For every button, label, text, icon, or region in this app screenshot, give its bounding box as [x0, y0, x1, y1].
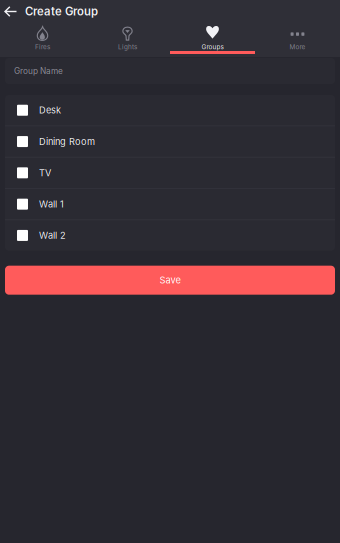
staticText: More	[289, 43, 305, 51]
staticText: Save	[159, 275, 180, 286]
staticText: Lights	[118, 43, 137, 51]
staticText: Groups	[201, 43, 223, 51]
staticText: Group Name	[14, 66, 63, 76]
staticText: Wall 1	[39, 199, 64, 210]
staticText: Create Group	[25, 5, 98, 18]
button[interactable]: More	[255, 23, 340, 57]
button[interactable]: Back	[0, 0, 25, 23]
button[interactable]: Lights	[85, 23, 170, 57]
button[interactable]: Wall 1	[5, 189, 335, 219]
staticText: Desk	[39, 105, 61, 116]
button[interactable]: Fires	[0, 23, 85, 57]
staticText: Fires	[35, 43, 50, 51]
staticText: Dining Room	[39, 136, 95, 147]
staticText: Wall 2	[39, 230, 66, 241]
button[interactable]: Wall 2	[5, 220, 335, 251]
button[interactable]: TV	[5, 158, 335, 188]
button[interactable]: Dining Room	[5, 126, 335, 157]
button[interactable]: Save	[0, 266, 340, 295]
button[interactable]: Groups	[170, 23, 255, 57]
button[interactable]: Desk	[5, 95, 335, 125]
staticText: TV	[39, 167, 51, 178]
